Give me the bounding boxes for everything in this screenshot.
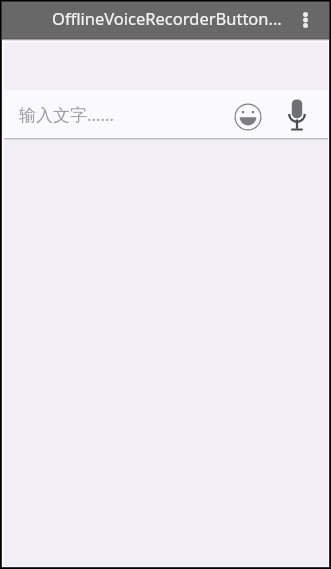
- button[interactable]: More options: [291, 2, 319, 38]
- button[interactable]: Emoji: [226, 94, 270, 139]
- staticText: OfflineVoiceRecorderButton...: [52, 7, 282, 29]
- button[interactable]: Voice input: [277, 92, 317, 137]
- staticText: 输入文字……: [19, 103, 114, 126]
